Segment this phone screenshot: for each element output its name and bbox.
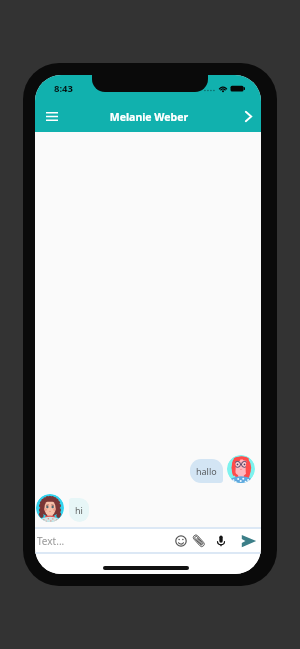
staticText: hallo xyxy=(196,465,217,477)
button[interactable]: Send xyxy=(240,527,258,554)
button[interactable]: hi xyxy=(69,498,89,522)
button[interactable]: Menu xyxy=(35,100,68,132)
button[interactable]: Voice message xyxy=(212,527,230,554)
button[interactable]: Forward xyxy=(235,100,261,132)
button[interactable]: Emoji xyxy=(172,527,190,554)
staticText: Melanie Weber xyxy=(68,110,230,124)
staticText: 8:43 xyxy=(54,82,73,95)
button[interactable]: hallo xyxy=(190,459,223,483)
staticText: hi xyxy=(75,504,83,516)
button[interactable]: Attach file xyxy=(190,527,208,554)
staticText: Text... xyxy=(37,534,65,548)
